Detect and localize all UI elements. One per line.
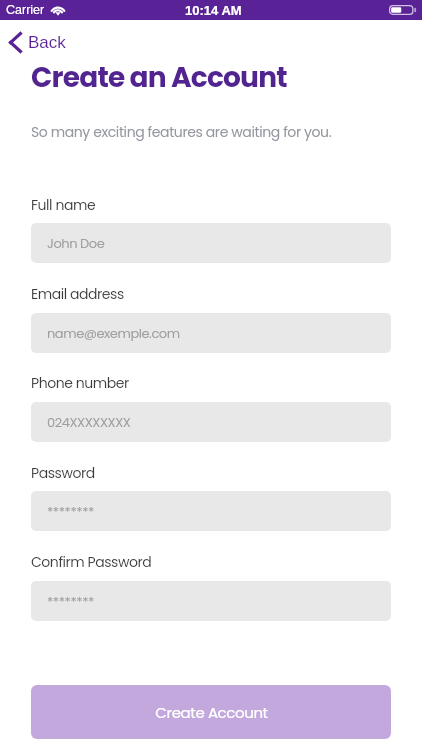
staticText: 10:14 AM xyxy=(185,3,242,18)
staticText: So many exciting features are waiting fo… xyxy=(31,122,332,142)
button[interactable]: 024XXXXXXXX xyxy=(31,402,391,442)
staticText: Confirm Password xyxy=(31,552,152,572)
staticText: Carrier xyxy=(6,3,45,17)
button[interactable]: ******** xyxy=(31,491,391,531)
staticText: Create Account xyxy=(155,702,268,723)
staticText: Phone number xyxy=(31,373,129,393)
button[interactable]: ******** xyxy=(31,581,391,621)
button[interactable]: name@exemple.com xyxy=(31,313,391,353)
staticText: Create an Account xyxy=(31,58,287,97)
staticText: ******** xyxy=(47,502,94,520)
staticText: Full name xyxy=(31,195,96,215)
other: Back xyxy=(9,32,22,53)
staticText: name@exemple.com xyxy=(47,324,180,342)
staticText: Password xyxy=(31,463,95,483)
staticText: Email address xyxy=(31,284,124,304)
staticText: ******** xyxy=(47,592,94,610)
staticText: John Doe xyxy=(47,234,105,252)
button[interactable]: John Doe xyxy=(31,223,391,263)
staticText: Back xyxy=(28,33,66,52)
staticText: 024XXXXXXXX xyxy=(47,413,131,431)
button[interactable]: Create Account xyxy=(31,685,391,739)
button[interactable]: Back xyxy=(9,29,66,55)
